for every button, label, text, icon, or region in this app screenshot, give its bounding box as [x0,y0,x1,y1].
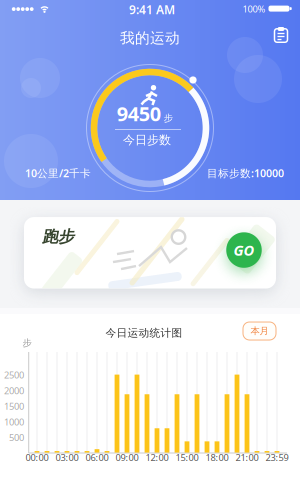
staticText: 12:00 [145,451,168,464]
staticText: 03:00 [55,451,78,464]
button[interactable]: GO [224,230,264,270]
staticText: GO [233,240,254,260]
staticText: 2500 [4,369,24,381]
staticText: 跑步 [42,227,74,246]
staticText: 09:00 [115,451,138,464]
staticText: 18:00 [205,451,228,464]
staticText: 9:41 AM [129,1,175,17]
staticText: 我的运动 [120,29,180,47]
staticText: 23:59 [265,451,288,464]
staticText: 目标步数:10000 [207,166,284,180]
staticText: 21:00 [235,451,258,464]
staticText: 本月 [250,325,268,337]
staticText: 今日运动统计图 [105,326,182,339]
staticText: 00:00 [25,451,48,464]
staticText: 15:00 [175,451,198,464]
staticText: 500 [9,431,24,444]
staticText: 06:00 [85,451,108,464]
staticText: 2000 [4,384,24,397]
button[interactable]: 跑步 [24,217,276,289]
button[interactable]: 本月 [243,322,276,340]
staticText: 1500 [4,400,24,412]
staticText: 步 [22,337,31,349]
staticText: 1000 [4,416,24,428]
button[interactable]: 运动记录 [269,22,293,46]
staticText: 9450 [117,100,161,127]
staticText: 10公里/2千卡 [25,166,91,180]
staticText: 100% [242,3,265,15]
staticText: 今日步数 [123,133,171,147]
staticText: 步 [164,112,173,124]
